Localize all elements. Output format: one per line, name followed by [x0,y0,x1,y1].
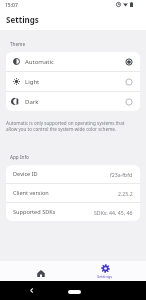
staticText: 15:07 [5,2,18,9]
staticText: Theme [10,41,26,47]
staticText: Automatic [25,58,54,66]
staticText: App Info [10,154,29,160]
button[interactable]: Device ID [6,165,140,183]
button[interactable]: Automatic [6,52,140,71]
staticText: Settings [97,274,113,279]
staticText: Supported SDKs [13,208,56,216]
button[interactable]: Home [9,261,73,281]
staticText: Settings [6,14,39,25]
staticText: Device ID [13,170,38,178]
button[interactable]: Back [26,285,37,296]
staticText: Dark [25,98,39,106]
staticText: SDKs: 44, 45, 46 [94,209,133,216]
staticText: f23a-fbfd [110,171,133,178]
button[interactable]: Supported SDKs [6,203,140,221]
staticText: Automatic is only supported on operating… [6,120,134,132]
button[interactable]: Light [6,72,140,91]
button[interactable]: Dark [6,92,140,111]
button[interactable]: Client version [6,184,140,202]
button[interactable]: Settings [73,261,137,281]
staticText: Light [25,78,40,86]
staticText: 2.25.2 [118,190,133,197]
staticText: Client version [13,189,49,197]
